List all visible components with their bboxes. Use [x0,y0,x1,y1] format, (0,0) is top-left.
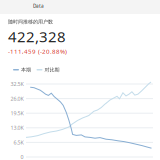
staticText: 本期 [21,67,31,73]
button[interactable]: 对比期 [36,67,59,73]
staticText: 13.0K [10,124,23,131]
staticText: 对比期 [44,67,59,73]
staticText: 422,328 [8,26,66,47]
staticText: 6.5K [13,139,23,146]
button[interactable]: 本期 [13,67,31,73]
staticText: Data [33,3,44,9]
staticText: 随时间推移的用户数 [8,18,53,25]
button[interactable]: Data [0,0,160,14]
staticText: 19.5K [10,110,23,117]
staticText: 32.5K [10,80,23,88]
staticText: 0 [20,153,23,160]
staticText: 26.0K [10,95,23,102]
staticText: -111,459 (-20.88%) [8,47,67,56]
